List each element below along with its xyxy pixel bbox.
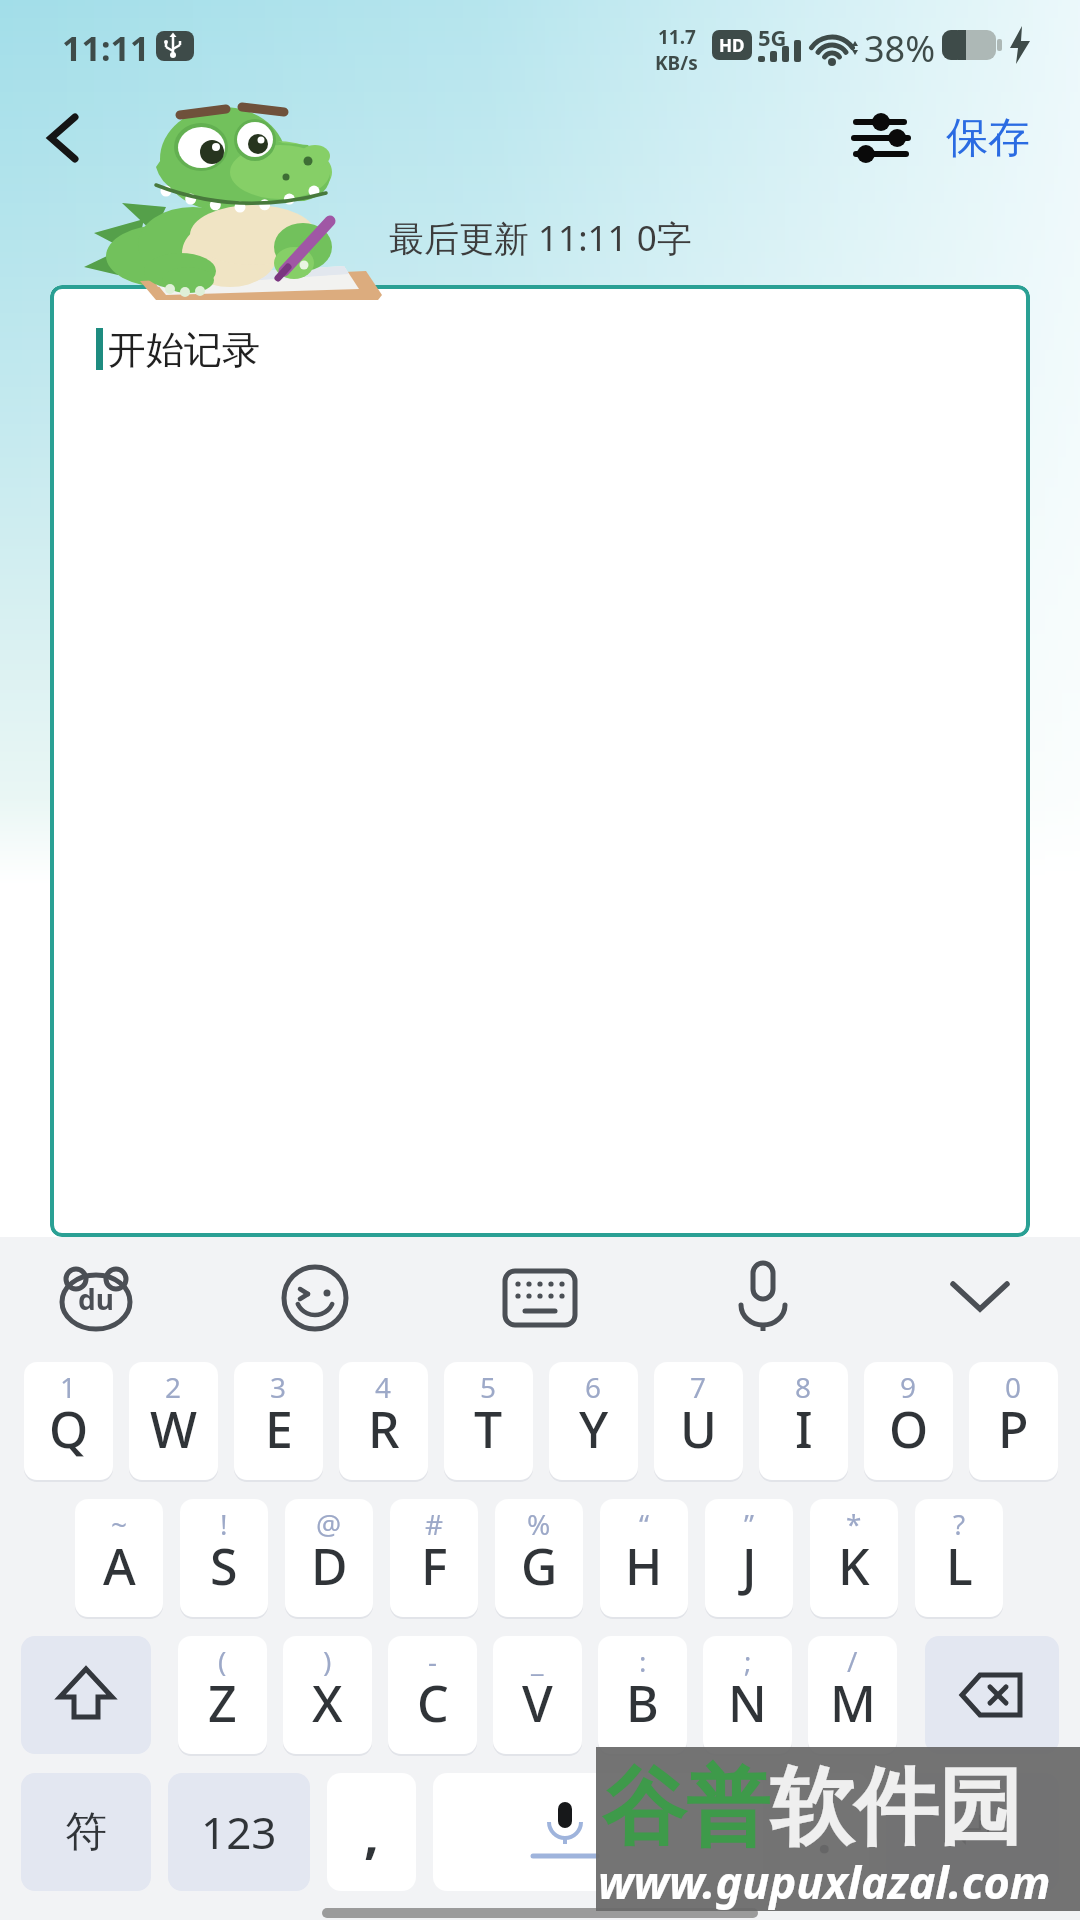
button[interactable]: 7	[654, 1362, 743, 1480]
staticText: 0	[1005, 1368, 1022, 1406]
staticText: Y	[579, 1395, 609, 1463]
staticText: T	[474, 1395, 503, 1463]
staticText: 开始记录	[108, 326, 260, 374]
button[interactable]: :	[598, 1636, 687, 1754]
button[interactable]: #	[390, 1499, 478, 1617]
staticText: 4	[375, 1368, 392, 1406]
button[interactable]: -	[388, 1636, 477, 1754]
staticText: 谷普	[602, 1755, 770, 1861]
staticText: _	[531, 1642, 544, 1680]
staticText: ,	[364, 1797, 379, 1868]
staticText: S	[210, 1532, 238, 1600]
staticText: 7	[690, 1368, 707, 1406]
button[interactable]: 9	[864, 1362, 953, 1480]
staticText: 8	[795, 1368, 812, 1406]
button[interactable]: ;	[703, 1636, 792, 1754]
staticText: .	[817, 1797, 832, 1868]
staticText: /	[847, 1642, 858, 1680]
button[interactable]	[925, 1636, 1059, 1754]
staticText: %	[527, 1505, 551, 1543]
staticText: 2	[165, 1368, 182, 1406]
button[interactable]: ⏎	[886, 1773, 1059, 1891]
staticText: 5	[480, 1368, 497, 1406]
button[interactable]: /	[808, 1636, 897, 1754]
button[interactable]	[854, 114, 908, 162]
staticText: ;	[744, 1642, 752, 1680]
button[interactable]: 1	[24, 1362, 113, 1480]
staticText: 1	[60, 1368, 77, 1406]
staticText: E	[265, 1395, 293, 1463]
button[interactable]	[505, 1271, 575, 1325]
staticText: Z	[208, 1669, 237, 1737]
button[interactable]: 保存	[946, 112, 1030, 165]
button[interactable]	[737, 1263, 789, 1333]
button[interactable]: 3	[234, 1362, 323, 1480]
staticText: du	[78, 1280, 114, 1318]
staticText: -	[428, 1642, 438, 1680]
staticText: !	[220, 1505, 228, 1543]
staticText: U	[680, 1395, 717, 1463]
button[interactable]: 开始记录	[50, 285, 1030, 1237]
button[interactable]	[21, 1636, 151, 1754]
staticText: HD	[719, 34, 745, 57]
button[interactable]: 5	[444, 1362, 533, 1480]
staticText: 软件园	[770, 1755, 1022, 1861]
button[interactable]	[950, 1281, 1010, 1315]
staticText: F	[421, 1532, 448, 1600]
staticText: #	[425, 1505, 444, 1543]
button[interactable]: @	[285, 1499, 373, 1617]
staticText: B	[626, 1669, 659, 1737]
button[interactable]: 2	[129, 1362, 218, 1480]
staticText: ~	[111, 1505, 128, 1543]
staticText: H	[625, 1532, 663, 1600]
button[interactable]: (	[178, 1636, 267, 1754]
staticText: Q	[49, 1395, 89, 1463]
staticText: W	[150, 1395, 198, 1463]
button[interactable]: ?	[915, 1499, 1003, 1617]
staticText: ?	[953, 1505, 966, 1543]
staticText: 6	[585, 1368, 602, 1406]
button[interactable]: *	[810, 1499, 898, 1617]
staticText: “	[639, 1505, 650, 1543]
staticText: G	[521, 1532, 558, 1600]
button[interactable]	[45, 113, 83, 163]
button[interactable]: _	[493, 1636, 582, 1754]
staticText: 3	[270, 1368, 287, 1406]
staticText: N	[728, 1669, 767, 1737]
button[interactable]: ”	[705, 1499, 793, 1617]
staticText: KB/s	[655, 50, 698, 76]
button[interactable]: )	[283, 1636, 372, 1754]
staticText: 11.7	[658, 24, 696, 50]
staticText: C	[417, 1669, 449, 1737]
staticText: I	[795, 1395, 813, 1463]
staticText: V	[522, 1669, 553, 1737]
button[interactable]: %	[495, 1499, 583, 1617]
staticText: O	[889, 1395, 929, 1463]
staticText: ⏎	[953, 1805, 992, 1859]
staticText: D	[311, 1532, 348, 1600]
button[interactable]: du	[60, 1267, 132, 1331]
button[interactable]: 8	[759, 1362, 848, 1480]
button[interactable]: .	[780, 1773, 869, 1891]
button[interactable]: 0	[969, 1362, 1058, 1480]
button[interactable]: “	[600, 1499, 688, 1617]
staticText: @	[316, 1505, 342, 1543]
staticText: 最后更新 11:11 0字	[389, 214, 692, 262]
staticText: L	[946, 1532, 973, 1600]
staticText: *	[846, 1505, 862, 1543]
button[interactable]: 123	[168, 1773, 310, 1891]
button[interactable]: 4	[339, 1362, 428, 1480]
button[interactable]	[433, 1773, 763, 1891]
staticText: 9	[900, 1368, 917, 1406]
staticText: 11:11	[62, 25, 150, 71]
staticText: (	[218, 1642, 227, 1680]
button[interactable]: 6	[549, 1362, 638, 1480]
button[interactable]	[282, 1265, 348, 1331]
button[interactable]: ~	[75, 1499, 163, 1617]
button[interactable]: !	[180, 1499, 268, 1617]
staticText: :	[639, 1642, 647, 1680]
button[interactable]: ,	[327, 1773, 416, 1891]
staticText: 符	[65, 1806, 107, 1859]
staticText: 123	[201, 1802, 277, 1862]
button[interactable]: 符	[21, 1773, 151, 1891]
